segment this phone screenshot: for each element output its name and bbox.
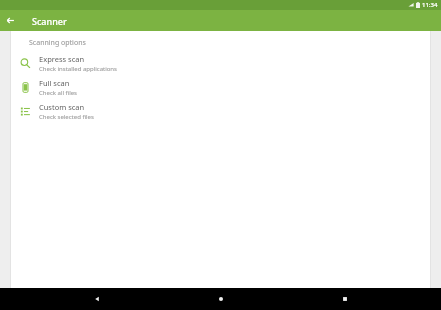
staticText: Custom scan: [39, 102, 85, 112]
button[interactable]: Custom scan: [11, 99, 430, 123]
staticText: Check all files: [39, 89, 77, 97]
button[interactable]: Recent apps: [317, 288, 372, 310]
button[interactable]: Full scan: [11, 75, 430, 99]
staticText: Full scan: [39, 78, 70, 88]
staticText: 11:34: [422, 1, 438, 9]
staticText: Scanning options: [29, 38, 86, 48]
button[interactable]: Express scan: [11, 51, 430, 75]
staticText: Check installed applications: [39, 65, 117, 73]
button[interactable]: Home: [193, 288, 248, 310]
staticText: Scanner: [32, 15, 67, 27]
button[interactable]: Navigate up: [0, 10, 21, 31]
button[interactable]: Back: [69, 288, 124, 310]
staticText: Check selected files: [39, 113, 94, 121]
staticText: Express scan: [39, 54, 85, 64]
